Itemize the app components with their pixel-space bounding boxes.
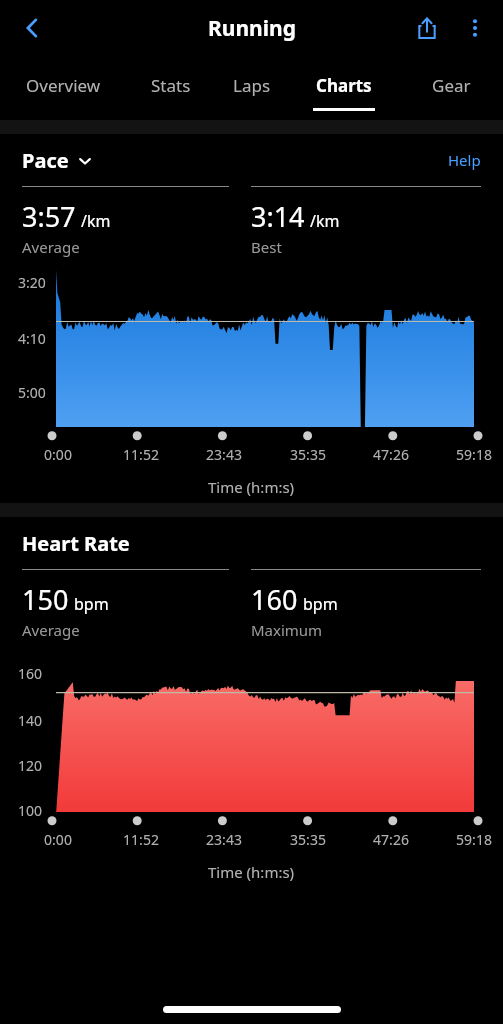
button[interactable]: Overview (11, 56, 115, 120)
staticText: 140 (18, 711, 43, 730)
button[interactable]: Gear (399, 56, 503, 120)
staticText: 160 (251, 581, 298, 618)
staticText: 47:26 (365, 830, 417, 849)
staticText: 35:35 (282, 445, 334, 464)
staticText: Time (h:m:s) (208, 862, 295, 882)
staticText: Laps (233, 74, 271, 97)
staticText: Gear (432, 74, 471, 97)
staticText: Charts (316, 74, 372, 97)
staticText: 4:10 (18, 329, 46, 348)
button[interactable]: Pace (22, 147, 93, 174)
staticText: 0:00 (32, 830, 84, 849)
staticText: Maximum (251, 620, 323, 640)
staticText: /km (310, 210, 340, 232)
staticText: 35:35 (282, 830, 334, 849)
staticText: Pace (22, 147, 69, 174)
staticText: 3:57 (22, 198, 76, 235)
staticText: 160 (18, 664, 43, 683)
staticText: Average (22, 237, 80, 257)
staticText: 100 (18, 801, 43, 820)
staticText: 3:14 (251, 198, 305, 235)
button[interactable]: Laps (200, 56, 304, 120)
staticText: 23:43 (198, 445, 250, 464)
staticText: 150 (22, 581, 69, 618)
button[interactable]: More options (451, 4, 499, 52)
staticText: bpm (74, 593, 109, 615)
staticText: Average (22, 620, 80, 640)
button[interactable]: Back (8, 4, 56, 52)
button[interactable]: Stats (119, 56, 223, 120)
staticText: 0:00 (32, 445, 84, 464)
staticText: /km (81, 210, 111, 232)
staticText: 47:26 (365, 445, 417, 464)
staticText: Stats (151, 74, 191, 97)
button[interactable]: Share (403, 4, 451, 52)
staticText: Help (448, 150, 481, 170)
staticText: Heart Rate (22, 530, 130, 557)
staticText: 59:18 (448, 830, 500, 849)
staticText: Best (251, 237, 282, 257)
button[interactable]: Charts (292, 56, 396, 120)
staticText: 5:00 (18, 383, 46, 402)
staticText: Time (h:m:s) (208, 477, 295, 497)
staticText: 59:18 (448, 445, 500, 464)
staticText: Overview (26, 74, 101, 97)
staticText: 120 (18, 756, 43, 775)
button[interactable]: Help (444, 146, 485, 174)
staticText: Running (208, 14, 296, 43)
staticText: bpm (303, 593, 338, 615)
staticText: 11:52 (115, 830, 167, 849)
staticText: 3:20 (18, 273, 46, 292)
staticText: 11:52 (115, 445, 167, 464)
staticText: 23:43 (198, 830, 250, 849)
